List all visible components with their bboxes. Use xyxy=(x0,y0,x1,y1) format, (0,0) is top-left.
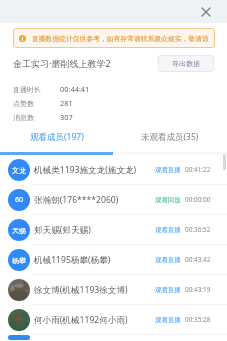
button[interactable]: 天赐 xyxy=(0,215,227,245)
button[interactable]: 导出数据 xyxy=(158,55,214,72)
staticText: 观看回放 xyxy=(155,196,181,204)
staticText: 机械类1193施文龙(施文龙) xyxy=(34,164,155,176)
staticText: 直播时长 xyxy=(13,85,41,94)
staticText: 文龙 xyxy=(12,166,26,175)
staticText: 杨攀 xyxy=(12,256,26,265)
staticText: 消息数 xyxy=(13,113,34,122)
button[interactable]: 文龙 xyxy=(0,155,227,185)
staticText: 直播数据统计仅供参考，如有异常请联系观众核实，敬请谅解 xyxy=(32,34,212,43)
button[interactable]: 徐文博(机械1193徐文博) xyxy=(0,275,227,305)
staticText: 307 xyxy=(60,112,73,122)
staticText: 观看直播 xyxy=(155,316,181,324)
staticText: 徐文博(机械1193徐文博) xyxy=(34,284,155,296)
staticText: 00:43:19 xyxy=(185,285,211,294)
staticText: 00:43:42 xyxy=(185,255,211,264)
staticText: 281 xyxy=(60,98,73,108)
button[interactable]: Close xyxy=(199,5,213,19)
staticText: 00:35:28 xyxy=(185,315,211,324)
staticText: 点赞数 xyxy=(13,99,34,108)
staticText: 何小雨(机械1192何小雨) xyxy=(34,314,155,326)
staticText: 郏天赐(郏天赐) xyxy=(34,224,155,236)
staticText: 天赐 xyxy=(12,226,26,235)
staticText: 观看直播 xyxy=(155,166,181,174)
staticText: 00:00:00 xyxy=(185,195,211,204)
staticText: 00:41:22 xyxy=(185,165,211,174)
button[interactable]: 60 xyxy=(0,185,227,215)
staticText: 60 xyxy=(15,195,24,205)
button[interactable]: 观看成员(197) xyxy=(0,131,113,152)
button[interactable]: 未观看成员(35) xyxy=(113,131,227,152)
staticText: 金工实习·磨削线上教学2 xyxy=(13,57,111,69)
staticText: 观看成员(197) xyxy=(30,131,84,143)
staticText: 机械1195杨攀(杨攀) xyxy=(34,254,155,266)
staticText: 观看直播 xyxy=(155,256,181,264)
button[interactable]: 杨攀 xyxy=(0,245,227,275)
staticText: 00:44:41 xyxy=(60,84,90,94)
staticText: 张瀚朝(176****2060) xyxy=(34,194,155,206)
staticText: 00:36:52 xyxy=(185,225,211,234)
staticText: 观看直播 xyxy=(155,286,181,294)
button[interactable]: 何小雨(机械1192何小雨) xyxy=(0,305,227,335)
button[interactable] xyxy=(0,335,227,341)
staticText: 观看直播 xyxy=(155,226,181,234)
staticText: 未观看成员(35) xyxy=(141,131,199,143)
staticText: 导出数据 xyxy=(172,59,200,68)
